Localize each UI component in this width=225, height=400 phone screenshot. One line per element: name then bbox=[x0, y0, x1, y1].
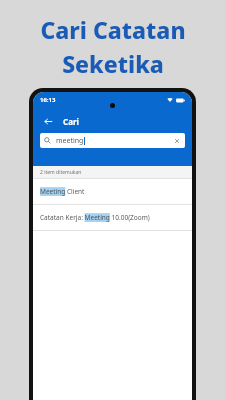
button[interactable]: 2 item ditemukan bbox=[33, 166, 192, 178]
button[interactable]: Clear bbox=[172, 136, 181, 145]
button[interactable]: Back bbox=[40, 113, 56, 129]
staticText: Catatan Kerja: Meeting 10.00(Zoom) bbox=[40, 213, 150, 222]
staticText: Seketika bbox=[62, 48, 164, 79]
staticText: 2 item ditemukan bbox=[40, 169, 82, 176]
button[interactable]: meeting bbox=[40, 133, 185, 148]
staticText: Cari Catatan bbox=[40, 14, 186, 45]
button[interactable]: Catatan Kerja: Meeting 10.00(Zoom) bbox=[33, 205, 192, 230]
staticText: meeting bbox=[56, 136, 84, 146]
staticText: Cari bbox=[63, 116, 79, 127]
staticText: Meeting Client bbox=[40, 187, 85, 196]
button[interactable]: Meeting Client bbox=[33, 179, 192, 204]
staticText: 16:13 bbox=[40, 96, 56, 104]
